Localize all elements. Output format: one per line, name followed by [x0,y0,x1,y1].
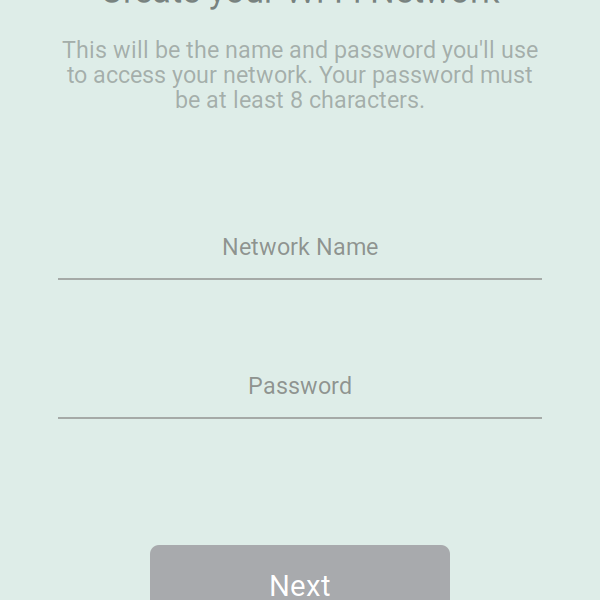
staticText: to access your network. Your password mu… [67,61,533,89]
button[interactable]: Password [58,364,542,418]
staticText: Password [248,372,352,400]
staticText: Network Name [222,233,378,261]
button[interactable]: Next [150,545,450,600]
staticText: This will be the name and password you'l… [62,36,538,64]
button[interactable]: Network Name [58,225,542,279]
staticText: Next [269,569,331,600]
staticText: be at least 8 characters. [175,86,425,114]
staticText: Create your Wi-Fi Network [100,0,500,11]
